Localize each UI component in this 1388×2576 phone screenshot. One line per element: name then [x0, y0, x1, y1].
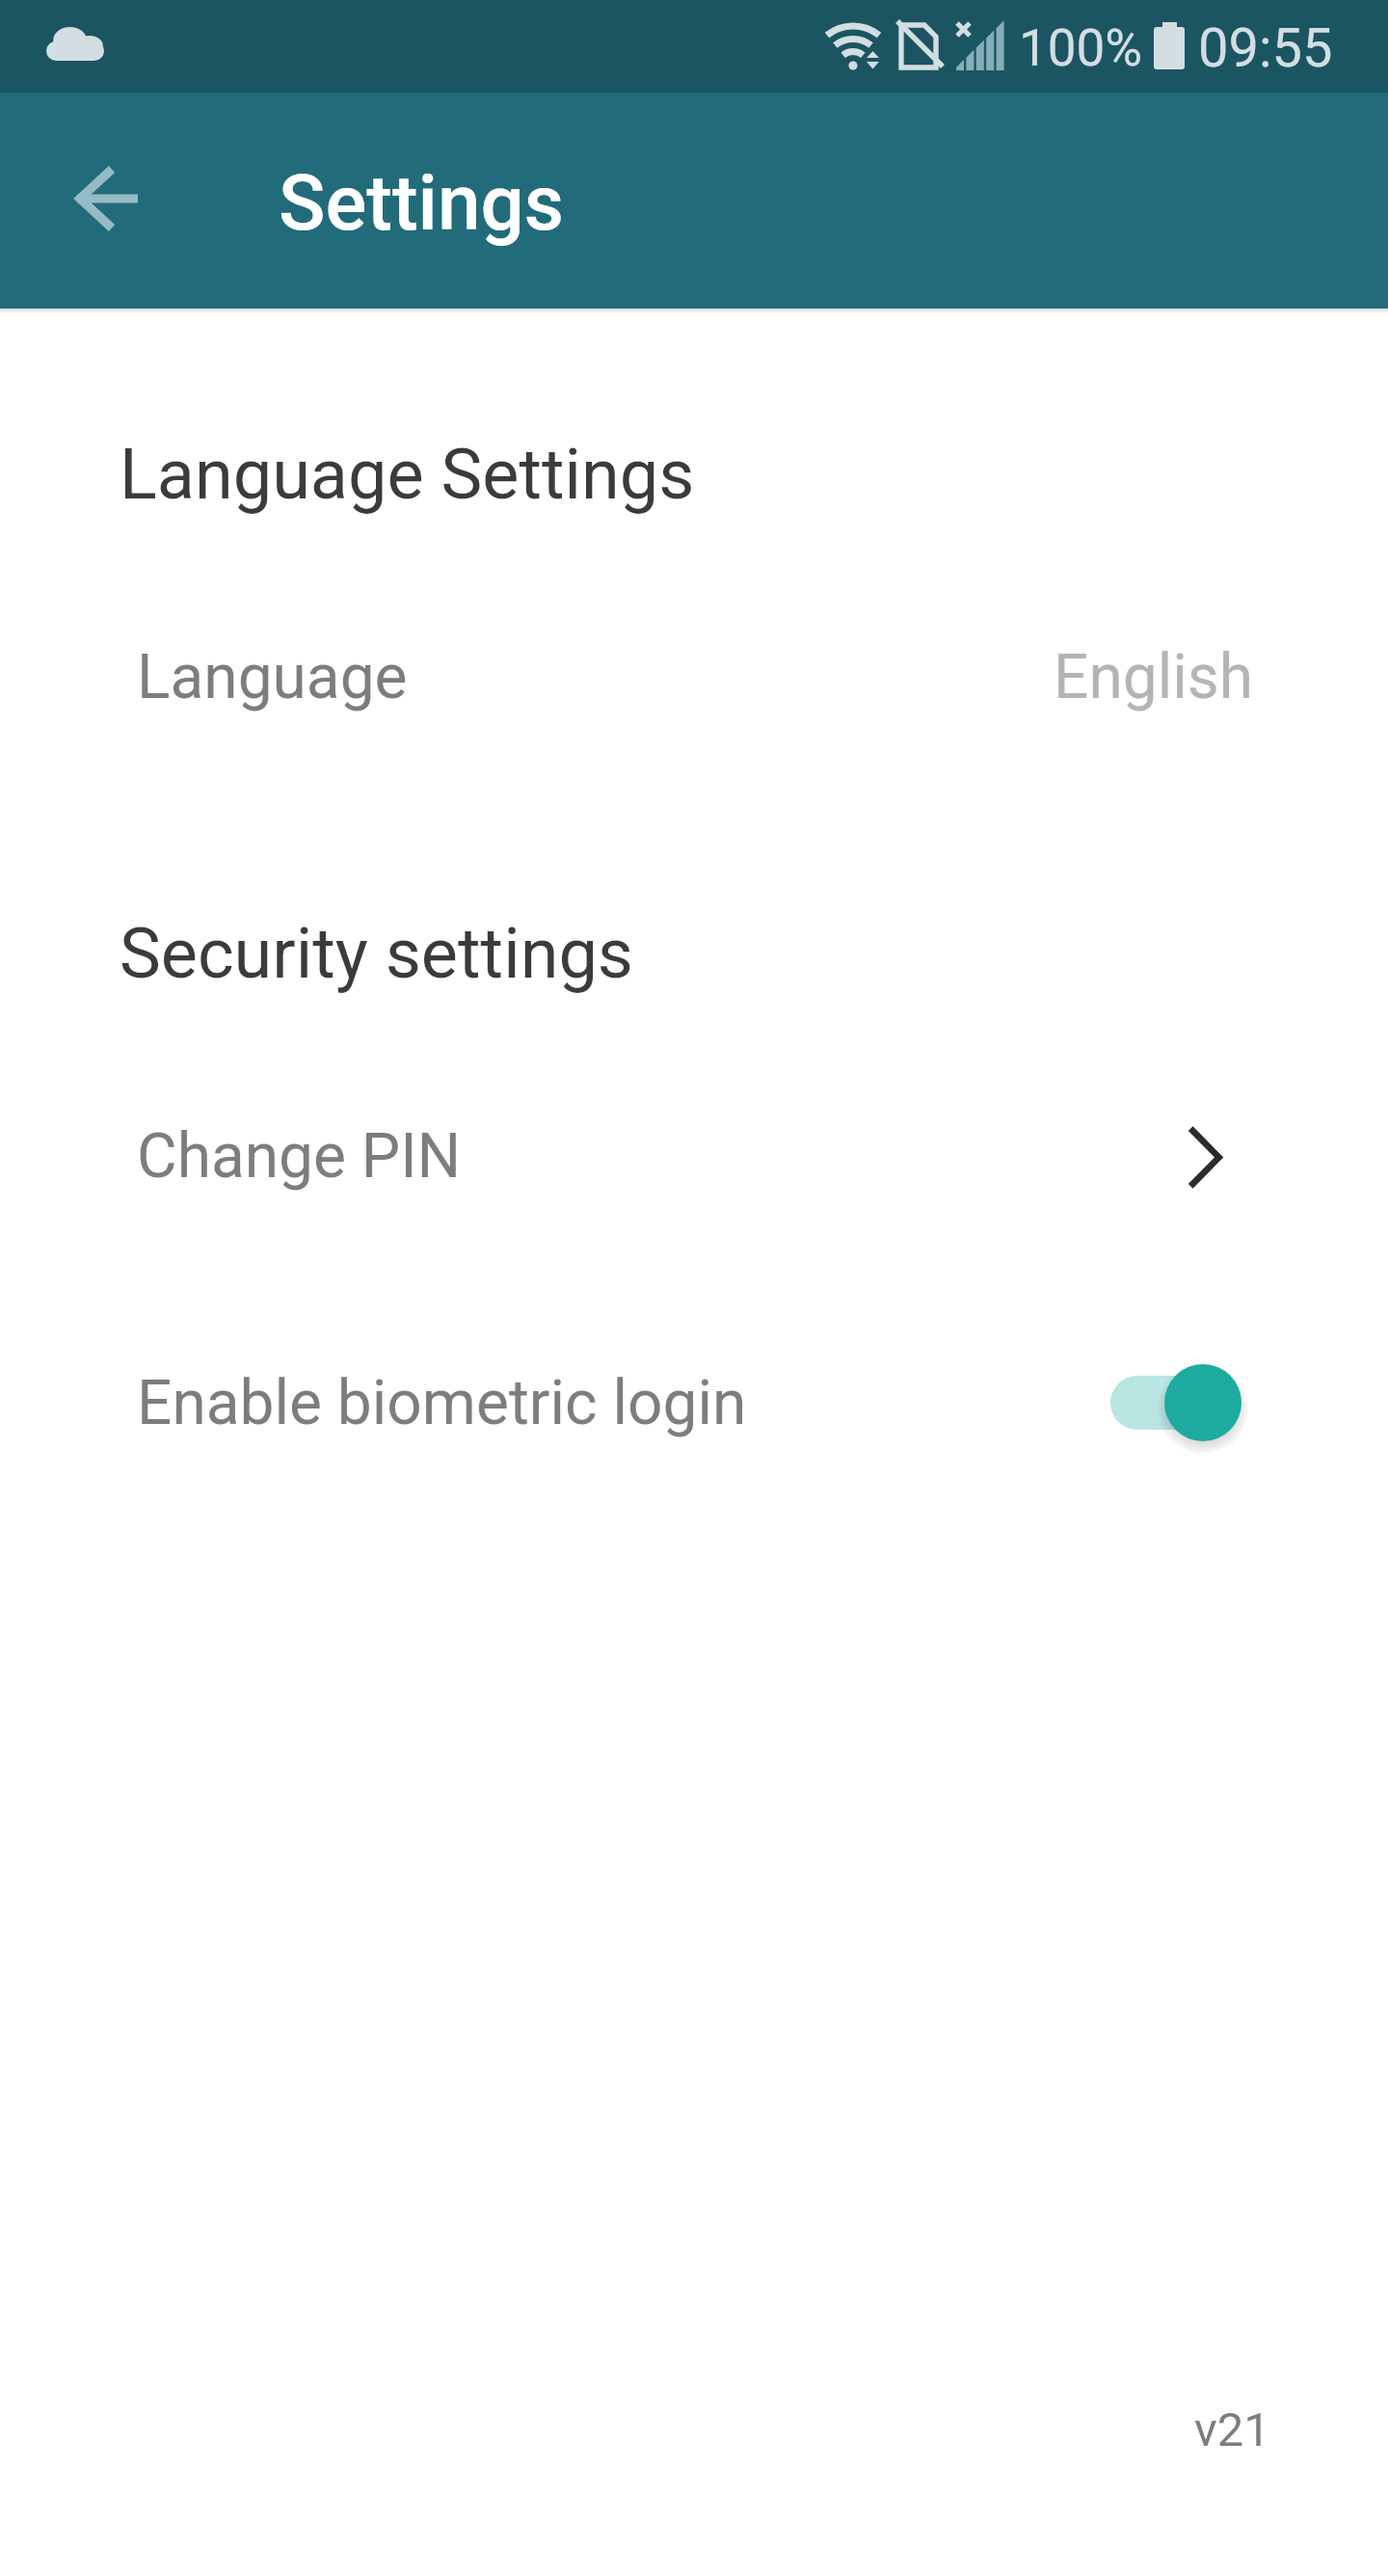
staticText: Security settings: [120, 913, 634, 994]
button[interactable]: Enable biometric login: [0, 1331, 1388, 1474]
staticText: v21: [1194, 2402, 1270, 2457]
staticText: Enable biometric login: [137, 1367, 747, 1439]
button[interactable]: Enable biometric login: [1110, 1356, 1241, 1449]
staticText: Settings: [279, 158, 565, 249]
staticText: Language Settings: [120, 434, 695, 515]
button[interactable]: Back: [37, 130, 173, 267]
staticText: Change PIN: [137, 1120, 462, 1193]
staticText: English: [1054, 641, 1254, 713]
staticText: 100%: [1019, 18, 1143, 78]
button[interactable]: Change PIN: [0, 1085, 1388, 1227]
staticText: 09:55: [1198, 16, 1333, 80]
staticText: Language: [137, 641, 408, 713]
button[interactable]: Language: [0, 605, 1388, 748]
